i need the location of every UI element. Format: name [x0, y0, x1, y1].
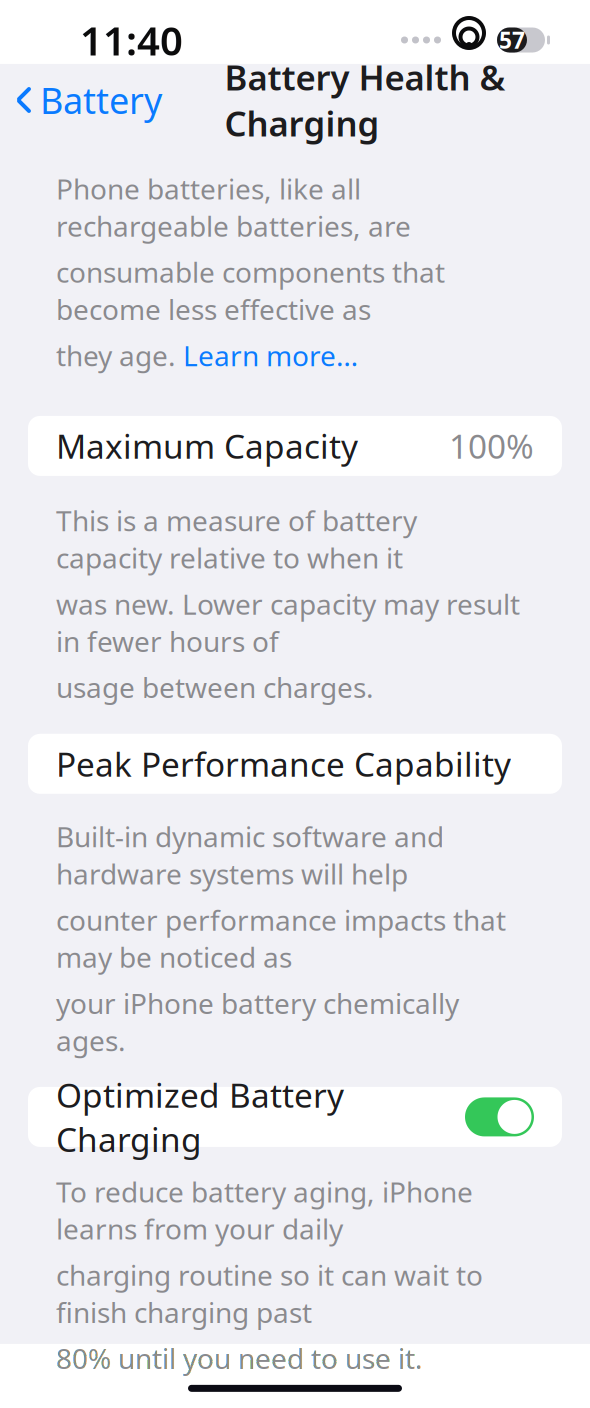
staticText: This is a measure of battery capacity re…: [56, 502, 417, 576]
button[interactable]: Battery: [0, 76, 170, 124]
staticText: 11:40: [80, 13, 183, 66]
button[interactable]: Learn more…: [183, 337, 358, 374]
staticText: Battery: [40, 76, 162, 124]
staticText: Built-in dynamic software and hardware s…: [56, 818, 444, 892]
staticText: Optimized Battery Charging: [56, 1073, 344, 1161]
button[interactable]: Peak Performance Capability: [0, 734, 590, 794]
staticText: Maximum Capacity: [56, 424, 358, 468]
staticText: 100%: [449, 424, 534, 468]
staticText: 57: [499, 25, 525, 55]
staticText: your iPhone battery chemically ages.: [56, 985, 459, 1059]
button[interactable]: Optimized Battery Charging: [0, 1087, 590, 1147]
staticText: they age.: [56, 337, 183, 374]
staticText: usage between charges.: [56, 669, 374, 706]
staticText: was new. Lower capacity may result in fe…: [56, 585, 520, 660]
staticText: 80% until you need to use it.: [56, 1340, 423, 1377]
staticText: Battery Health & Charging: [224, 54, 505, 146]
staticText: charging routine so it can wait to finis…: [56, 1256, 483, 1331]
staticText: Peak Performance Capability: [56, 742, 511, 786]
button[interactable]: Maximum Capacity: [0, 416, 590, 476]
staticText: To reduce battery aging, iPhone learns f…: [56, 1173, 473, 1247]
staticText: Learn more…: [183, 337, 358, 374]
staticText: consumable components that become less e…: [56, 253, 445, 328]
staticText: counter performance impacts that may be …: [56, 901, 506, 976]
staticText: Phone batteries, like all rechargeable b…: [56, 170, 411, 244]
